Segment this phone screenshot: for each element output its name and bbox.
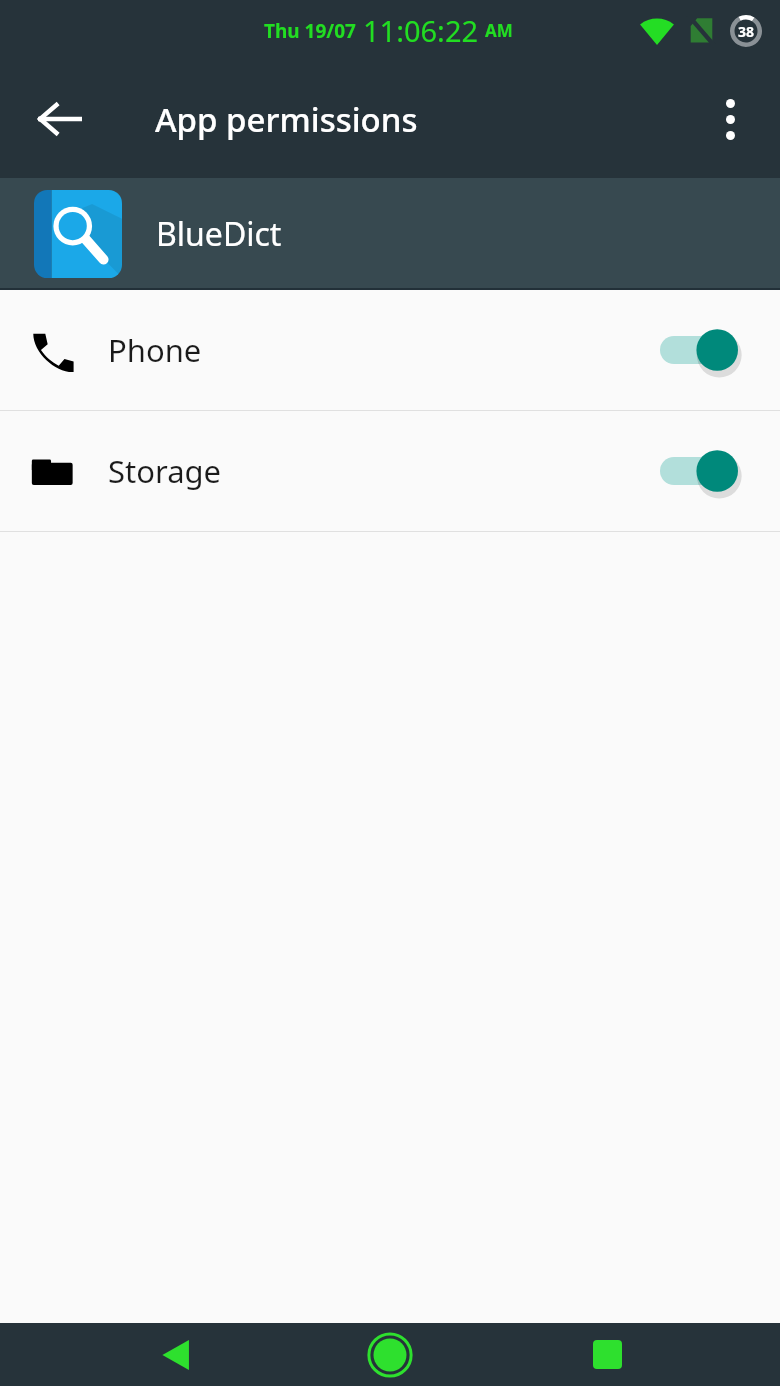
button[interactable]: Phone	[0, 290, 780, 410]
staticText: Storage	[108, 450, 222, 492]
staticText: 38	[738, 22, 755, 41]
button[interactable]: Back	[18, 77, 102, 161]
staticText: Thu 19/07	[264, 18, 356, 44]
staticText: BlueDict	[156, 212, 282, 256]
staticText: 11:06:22	[363, 11, 479, 50]
button[interactable]: Recent apps	[561, 1323, 653, 1386]
button[interactable]: More options	[694, 83, 766, 155]
button[interactable]: BlueDict	[0, 178, 780, 290]
staticText: Phone	[108, 329, 202, 371]
staticText: AM	[485, 19, 513, 42]
button[interactable]: Storage	[0, 411, 780, 531]
button[interactable]: Toggle permission	[660, 444, 740, 498]
button[interactable]: Toggle permission	[660, 323, 740, 377]
button[interactable]: Home	[344, 1323, 436, 1386]
staticText: App permissions	[155, 97, 418, 142]
button[interactable]: Back	[130, 1323, 222, 1386]
